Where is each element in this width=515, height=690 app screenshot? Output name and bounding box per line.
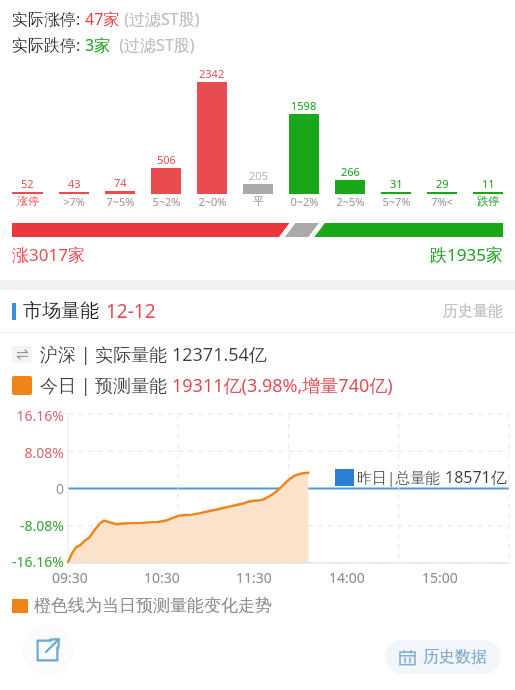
staticText: 2~5%	[336, 194, 365, 209]
staticText: 5~2%	[152, 194, 181, 209]
staticText: 266	[341, 164, 360, 179]
staticText: 0	[55, 479, 64, 498]
staticText: 3家	[85, 34, 111, 56]
staticText: 5~7%	[382, 194, 411, 209]
staticText: 7%<	[431, 194, 453, 209]
staticText: 18571亿	[445, 466, 507, 488]
staticText: 19311亿(3.98%,增量740亿)	[172, 373, 393, 398]
staticText: 1598	[291, 98, 317, 113]
staticText: 15:00	[422, 568, 458, 587]
staticText: 506	[157, 152, 176, 167]
button[interactable]: 历史量能	[443, 302, 503, 321]
staticText: 昨日|总量能	[357, 467, 445, 487]
staticText: 橙色线为当日预测量能变化走势	[34, 595, 272, 616]
staticText: 52	[21, 176, 34, 191]
staticText: 涨3017家	[12, 243, 85, 266]
staticText: 2342	[199, 66, 225, 81]
staticText: 实际跌停:	[12, 34, 85, 56]
staticText: 16.16%	[16, 406, 64, 425]
staticText: 今日 | 预测量能	[40, 373, 172, 398]
staticText: 实际涨停:	[12, 8, 85, 30]
staticText: 0~2%	[290, 194, 319, 209]
staticText: 8.08%	[24, 443, 64, 462]
staticText: 历史量能	[443, 302, 503, 321]
staticText: 市场量能	[23, 299, 99, 323]
button[interactable]: 分享 Share	[22, 624, 74, 676]
staticText: 74	[114, 175, 127, 190]
staticText: 29	[436, 176, 449, 191]
staticText: 跌1935家	[430, 243, 503, 266]
staticText: (过滤ST股)	[120, 8, 200, 30]
staticText: 43	[68, 176, 81, 191]
staticText: (过滤ST股)	[111, 34, 195, 56]
staticText: 12-12	[106, 298, 156, 324]
staticText: 涨停	[17, 194, 39, 208]
staticText: 11:30	[236, 568, 272, 587]
staticText: 跌停	[477, 194, 499, 208]
staticText: 历史数据	[423, 647, 487, 667]
staticText: 14:00	[329, 568, 365, 587]
staticText: 205	[249, 168, 268, 183]
button[interactable]: 历史数据	[385, 640, 501, 674]
staticText: >7%	[63, 194, 85, 209]
staticText: 11	[482, 176, 495, 191]
staticText: -8.08%	[20, 516, 64, 535]
staticText: -16.16%	[12, 552, 64, 571]
staticText: 7~5%	[106, 194, 135, 209]
staticText: 2~0%	[198, 194, 227, 209]
staticText: 47家	[85, 8, 120, 30]
staticText: 31	[390, 176, 403, 191]
staticText: 平	[253, 194, 264, 208]
staticText: 09:30	[52, 568, 88, 587]
staticText: 10:30	[144, 568, 180, 587]
staticText: 沪深 | 实际量能 12371.54亿	[40, 342, 267, 367]
